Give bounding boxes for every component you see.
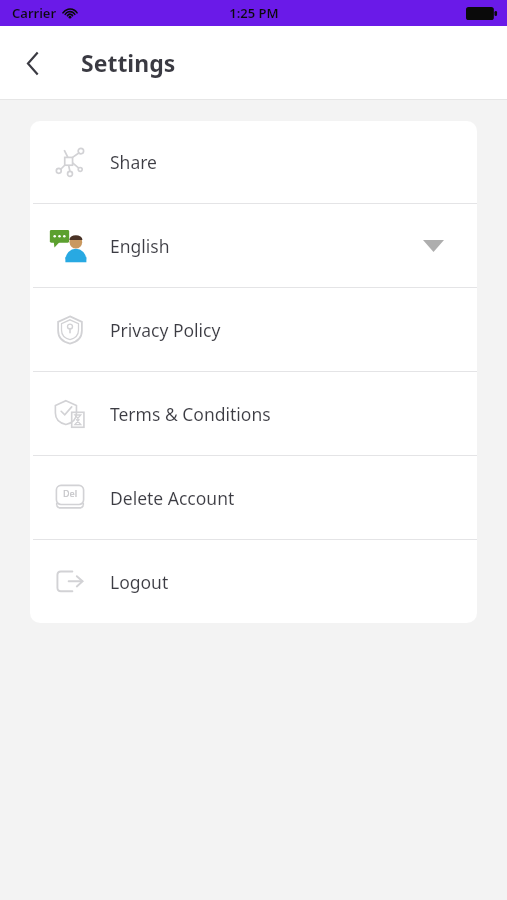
button[interactable]: Del	[30, 456, 477, 539]
staticText: 1:25 PM	[229, 4, 279, 22]
button[interactable]: Back	[11, 41, 55, 85]
other: Select language	[417, 230, 449, 262]
staticText: Settings	[81, 47, 176, 78]
button[interactable]: English	[30, 204, 477, 287]
staticText: English	[110, 234, 170, 258]
staticText: Privacy Policy	[110, 318, 221, 342]
staticText: Carrier	[12, 4, 57, 22]
button[interactable]: Logout	[30, 540, 477, 623]
button[interactable]: Share	[30, 121, 477, 203]
staticText: Delete Account	[110, 486, 235, 510]
staticText: Share	[110, 150, 157, 174]
staticText: Logout	[110, 570, 169, 594]
staticText: Del	[63, 487, 78, 499]
button[interactable]: Privacy Policy	[30, 288, 477, 371]
staticText: Terms & Conditions	[110, 402, 271, 426]
button[interactable]: Terms & Conditions	[30, 372, 477, 455]
